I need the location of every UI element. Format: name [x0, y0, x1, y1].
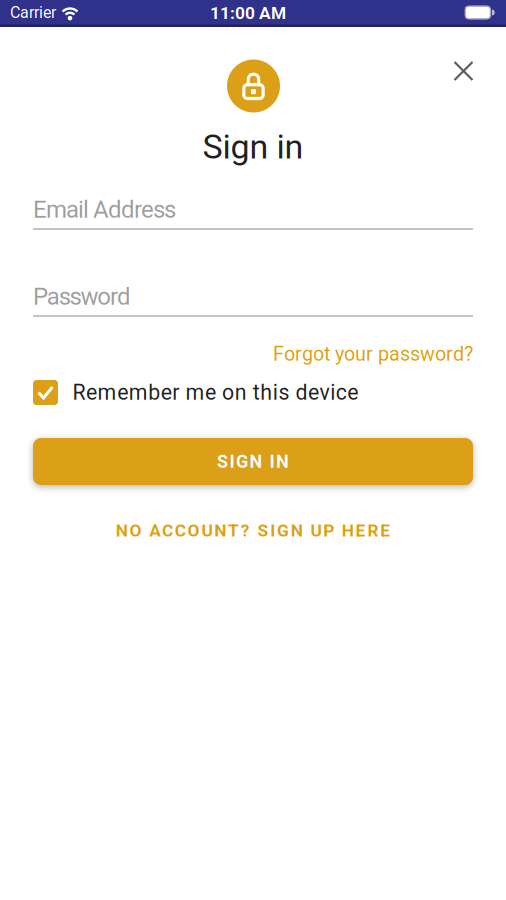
staticText: Remember me on this device [72, 380, 358, 405]
button[interactable]: Close [445, 53, 481, 89]
staticText: Forgot your password? [273, 342, 473, 365]
staticText: SIGN IN [217, 451, 289, 472]
staticText: Email Address [33, 195, 176, 223]
staticText: NO ACCOUNT? SIGN UP HERE [116, 520, 390, 541]
button[interactable]: Remember me on this device [33, 380, 473, 405]
staticText: 11:00 AM [210, 3, 286, 23]
button[interactable]: Forgot your password? [33, 342, 473, 365]
button[interactable]: SIGN IN [33, 438, 473, 485]
staticText: Password [33, 282, 131, 310]
staticText: Sign in [202, 127, 303, 167]
staticText: Carrier [10, 3, 56, 22]
button[interactable]: NO ACCOUNT? SIGN UP HERE [83, 520, 423, 541]
